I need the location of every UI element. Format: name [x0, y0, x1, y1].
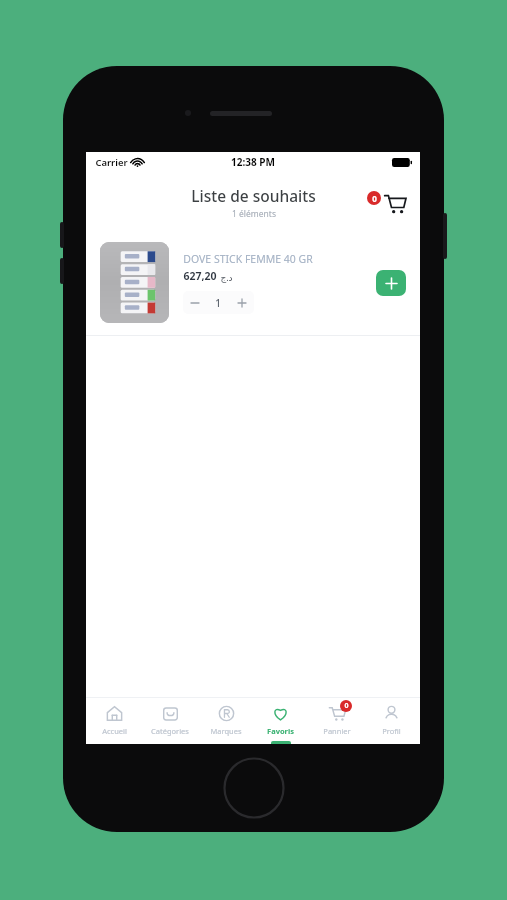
button[interactable]: Augmenter [230, 291, 254, 314]
staticText: Accueil [102, 726, 127, 736]
button[interactable]: Accueil [87, 698, 142, 744]
staticText: Carrier [95, 156, 128, 169]
staticText: Profil [382, 726, 401, 736]
staticText: Liste de souhaits [191, 185, 316, 206]
staticText: 12:38 PM [231, 155, 275, 169]
button[interactable]: Diminuer [183, 291, 206, 314]
button[interactable]: Ajouter au panier [376, 270, 406, 296]
staticText: Catégories [151, 726, 189, 736]
staticText: Pannier [323, 726, 351, 736]
staticText: 627,20 [183, 269, 217, 283]
staticText: 0 [372, 193, 377, 204]
staticText: 0 [344, 701, 349, 711]
button[interactable]: Profil [364, 698, 419, 744]
button[interactable]: Marques [198, 698, 253, 744]
staticText: Favoris [267, 726, 294, 736]
button[interactable]: DOVE STICK FEMME 40 GR [86, 230, 420, 335]
staticText: 1 éléments [232, 208, 276, 220]
staticText: 1 [215, 296, 221, 310]
staticText: Marques [210, 726, 242, 736]
button[interactable]: Panier [366, 189, 406, 219]
button[interactable]: Favoris [253, 698, 308, 744]
staticText: DOVE STICK FEMME 40 GR [183, 252, 313, 266]
button[interactable]: 0 [309, 698, 364, 744]
button[interactable]: Catégories [142, 698, 197, 744]
staticText: د.ج [220, 271, 233, 283]
